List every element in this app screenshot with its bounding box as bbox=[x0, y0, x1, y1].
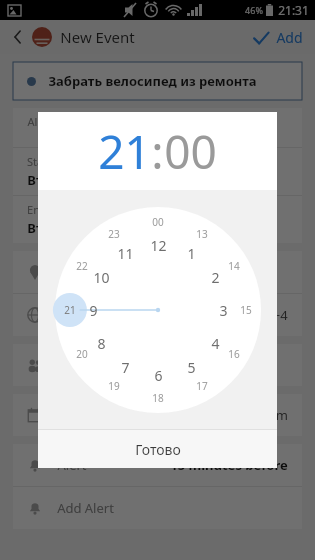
staticText: 22 bbox=[76, 259, 88, 273]
button[interactable]: Готово bbox=[38, 430, 277, 468]
staticText: Alert bbox=[57, 456, 87, 474]
button[interactable]: 16 bbox=[222, 342, 246, 366]
staticText: New Event bbox=[60, 27, 135, 47]
staticText: 46% bbox=[245, 4, 263, 16]
staticText: Готово bbox=[135, 440, 181, 459]
staticText: 23 bbox=[108, 227, 120, 241]
staticText: Guests bbox=[57, 356, 99, 374]
staticText: 12 bbox=[150, 236, 167, 255]
button[interactable]: All day bbox=[13, 108, 302, 147]
button[interactable]: Starts bbox=[13, 148, 302, 195]
button[interactable]: Alert bbox=[13, 444, 302, 486]
button[interactable]: 17 bbox=[190, 374, 214, 398]
staticText: 00 bbox=[164, 120, 217, 183]
button[interactable]: 18 bbox=[146, 386, 170, 410]
staticText: 4 bbox=[211, 334, 220, 353]
button[interactable]: Забрать велосипед из ремонта bbox=[13, 62, 302, 100]
button[interactable]: 23 bbox=[102, 222, 126, 246]
staticText: 20 bbox=[76, 347, 88, 361]
button[interactable]: 11 bbox=[112, 240, 138, 266]
button[interactable]: 8 bbox=[88, 330, 114, 356]
staticText: 21:31 bbox=[278, 2, 309, 18]
staticText: Вт, 12 мая 2015 г. bbox=[27, 219, 140, 237]
button[interactable]: 22 bbox=[70, 254, 94, 278]
button[interactable]: 12 bbox=[145, 232, 171, 258]
staticText: 15 bbox=[240, 303, 252, 317]
button[interactable]: 21 bbox=[98, 120, 151, 183]
button[interactable]: Add bbox=[248, 24, 307, 51]
staticText: All day bbox=[27, 114, 62, 129]
staticText: 1 bbox=[187, 244, 196, 263]
staticText: 5 bbox=[187, 358, 196, 377]
button[interactable]: Back bbox=[8, 27, 28, 47]
button[interactable]: 14 bbox=[222, 254, 246, 278]
staticText: gmail.com bbox=[224, 406, 288, 424]
staticText: 00 bbox=[152, 215, 164, 229]
button[interactable]: 4 bbox=[202, 330, 228, 356]
staticText: : bbox=[151, 120, 164, 183]
staticText: Time zone bbox=[57, 306, 120, 324]
staticText: 7 bbox=[121, 358, 130, 377]
staticText: 11 bbox=[117, 244, 134, 263]
button[interactable]: 7 bbox=[112, 354, 138, 380]
button[interactable]: 13 bbox=[190, 222, 214, 246]
button[interactable]: Guests bbox=[13, 344, 302, 386]
button[interactable]: 10 bbox=[88, 264, 114, 290]
staticText: 9 bbox=[89, 301, 98, 320]
staticText: Вт, 12 мая 2015 г. bbox=[27, 171, 140, 189]
staticText: 3 bbox=[219, 301, 228, 320]
staticText: 21 bbox=[64, 303, 76, 317]
button[interactable]: 19 bbox=[102, 374, 126, 398]
button[interactable]: 2 bbox=[202, 264, 228, 290]
staticText: Add bbox=[276, 28, 303, 47]
button[interactable]: 20 bbox=[70, 342, 94, 366]
button[interactable]: Add Alert bbox=[13, 487, 302, 529]
staticText: 14 bbox=[228, 259, 240, 273]
staticText: Location bbox=[57, 263, 110, 281]
button[interactable]: 00 bbox=[146, 210, 170, 234]
button[interactable]: Location bbox=[13, 251, 302, 293]
button[interactable]: 3 bbox=[210, 297, 236, 323]
staticText: Starts bbox=[27, 154, 57, 169]
staticText: 6 bbox=[154, 366, 163, 385]
staticText: Забрать велосипед из ремонта bbox=[48, 72, 257, 90]
staticText: 21 bbox=[98, 120, 151, 183]
button[interactable]: 21 bbox=[58, 298, 82, 322]
staticText: 18 bbox=[152, 391, 164, 405]
button[interactable]: 00 bbox=[164, 120, 217, 183]
button[interactable]: 9 bbox=[80, 297, 106, 323]
staticText: 19 bbox=[108, 379, 120, 393]
button[interactable]: 5 bbox=[178, 354, 204, 380]
staticText: 2 bbox=[211, 268, 220, 287]
staticText: Ends bbox=[27, 202, 52, 217]
staticText: 8 bbox=[97, 334, 106, 353]
staticText: 10 bbox=[93, 268, 110, 287]
button[interactable]: Ends bbox=[13, 196, 302, 243]
staticText: 17 bbox=[196, 379, 208, 393]
button[interactable]: 6 bbox=[145, 362, 171, 388]
staticText: 15 minutes before bbox=[170, 456, 288, 474]
staticText: 13 bbox=[196, 227, 208, 241]
button[interactable]: Time zone bbox=[13, 294, 302, 336]
staticText: 16 bbox=[228, 347, 240, 361]
button[interactable]: 1 bbox=[178, 240, 204, 266]
staticText: GMT+4 bbox=[244, 306, 288, 324]
staticText: Add Alert bbox=[57, 499, 114, 517]
button[interactable]: 15 bbox=[234, 298, 258, 322]
button[interactable]: Calendar bbox=[13, 394, 302, 436]
